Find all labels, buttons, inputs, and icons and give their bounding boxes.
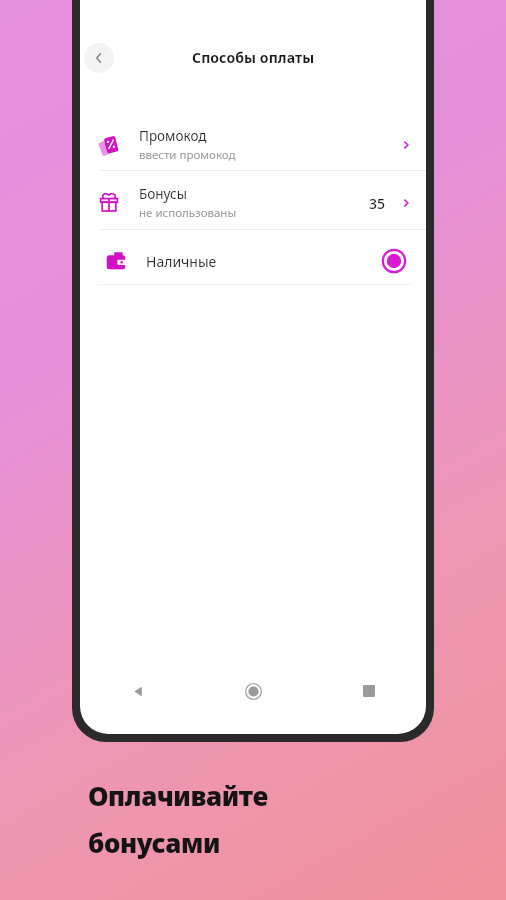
button[interactable]: Промокод xyxy=(80,120,426,170)
button[interactable]: Back xyxy=(80,667,196,715)
staticText: ввести промокод xyxy=(139,147,236,163)
button[interactable]: Бонусы xyxy=(80,178,426,228)
button[interactable]: Home xyxy=(196,667,311,715)
button[interactable]: Наличные xyxy=(87,238,419,284)
staticText: Промокод xyxy=(139,127,207,145)
staticText: 35 xyxy=(369,194,386,213)
staticText: бонусами xyxy=(88,825,220,860)
staticText: не использованы xyxy=(139,205,237,221)
staticText: Наличные xyxy=(146,252,217,271)
staticText: Оплачивайте xyxy=(88,778,268,813)
button[interactable]: Back xyxy=(84,43,114,73)
button[interactable]: Recents xyxy=(311,667,426,715)
staticText: Бонусы xyxy=(139,185,187,203)
staticText: Способы оплаты xyxy=(192,48,315,67)
